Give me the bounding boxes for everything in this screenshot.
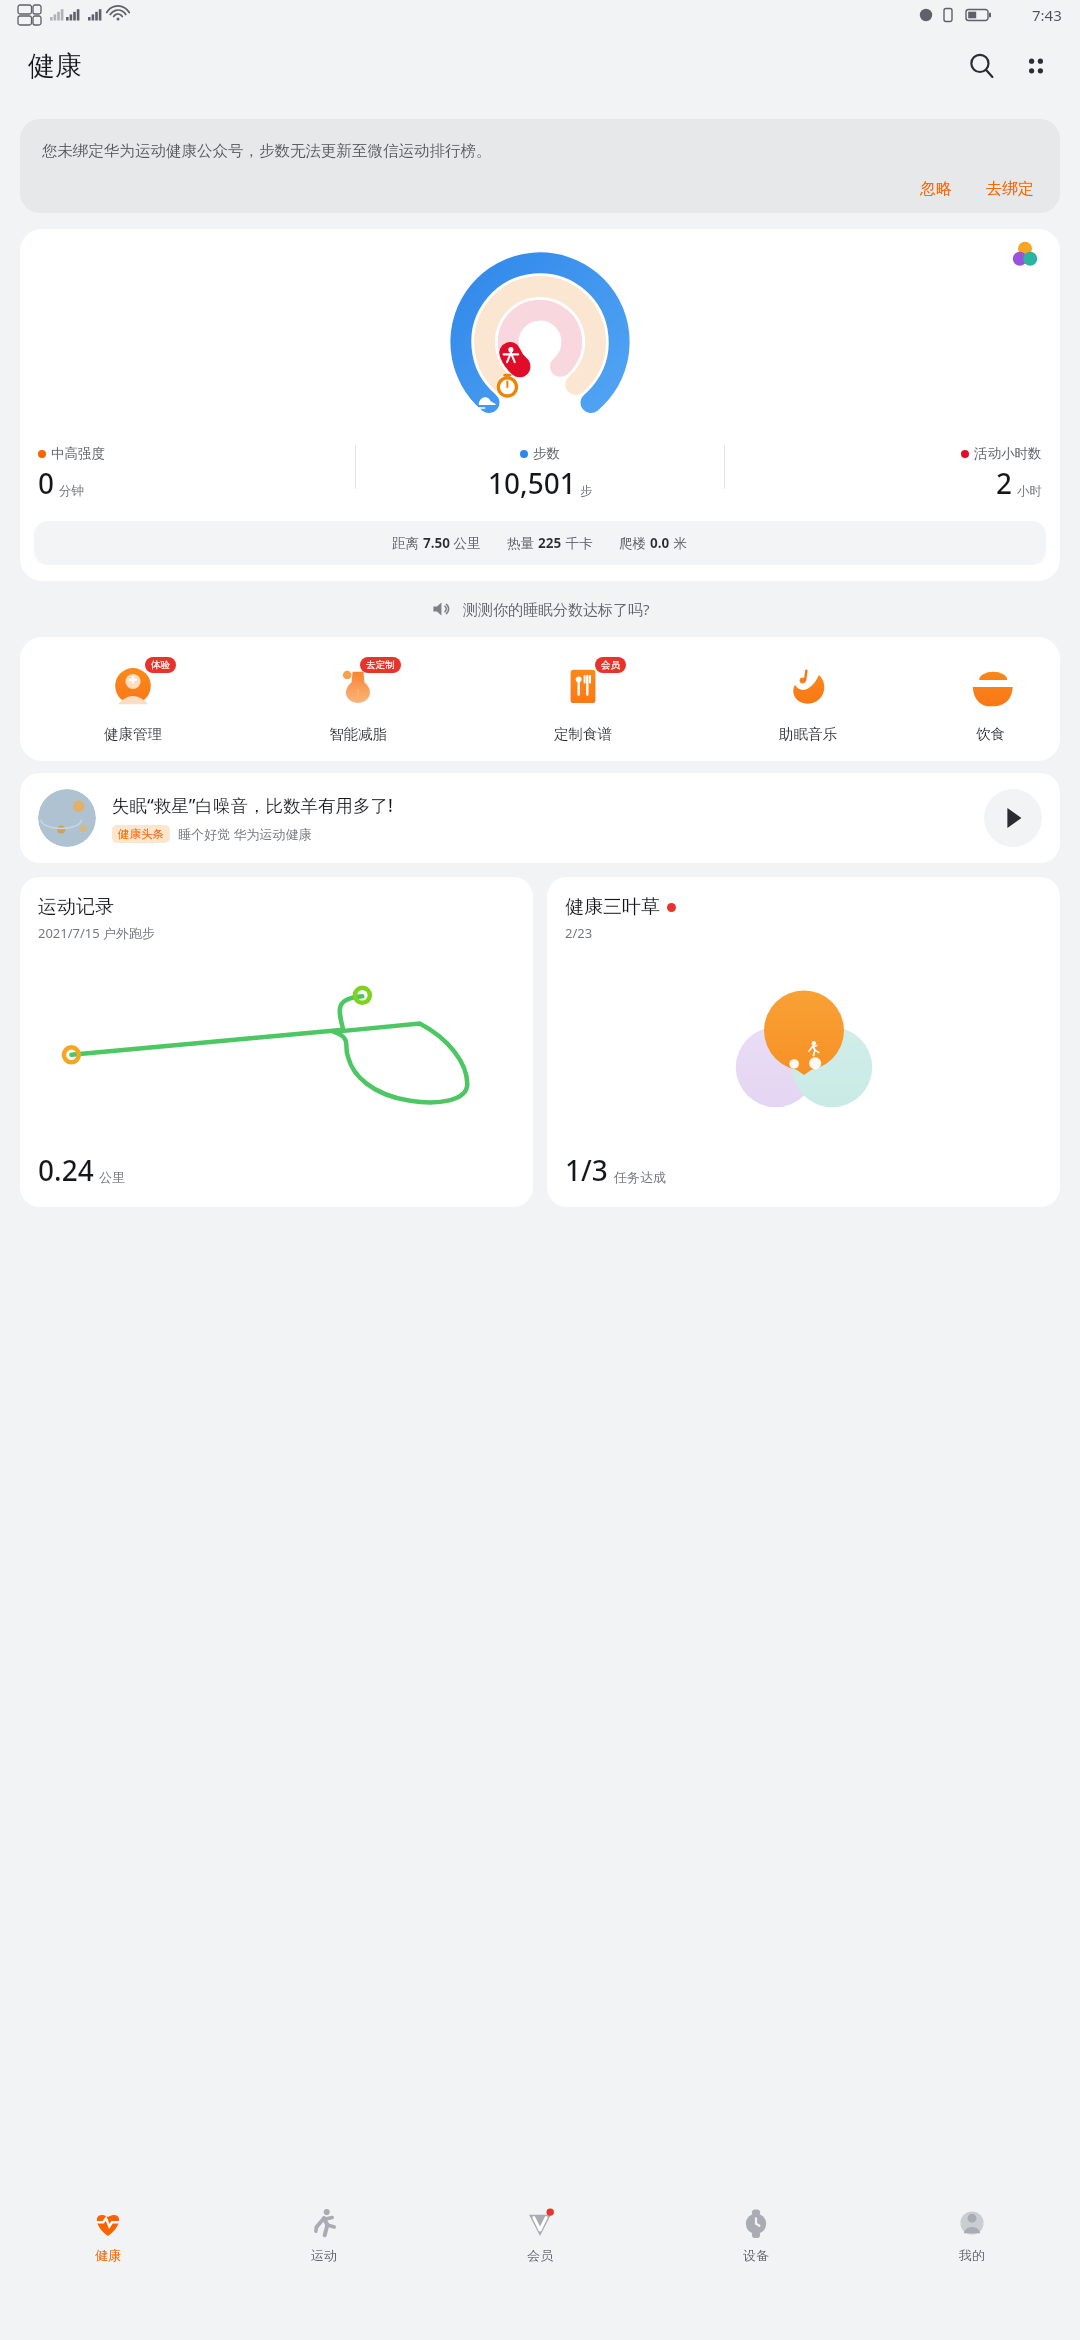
staticText: 去定制	[366, 659, 395, 671]
button[interactable]: 运动	[216, 2190, 432, 2340]
staticText: 运动	[311, 2247, 337, 2263]
staticText: 距离	[392, 534, 423, 552]
button[interactable]: 会员	[432, 2190, 648, 2340]
button[interactable]: 会员	[470, 659, 695, 743]
staticText: 健康三叶草	[565, 895, 660, 919]
staticText: 运动记录	[38, 895, 114, 919]
staticText: 热量	[507, 534, 538, 552]
button[interactable]: Search	[958, 42, 1006, 90]
staticText: 会员	[527, 2247, 553, 2263]
staticText: 步数	[533, 445, 560, 462]
staticText: 睡个好觉 华为运动健康	[178, 825, 312, 843]
button[interactable]: 您未绑定华为运动健康公众号，步数无法更新至微信运动排行榜。	[20, 119, 1060, 213]
staticText: 定制食谱	[554, 725, 612, 743]
staticText: 健康	[95, 2247, 121, 2263]
staticText: 助眠音乐	[779, 725, 837, 743]
staticText: 饮食	[976, 725, 1005, 743]
staticText: 7.50	[423, 534, 450, 552]
button[interactable]: 失眠“救星”白噪音，比数羊有用多了!	[20, 773, 1060, 863]
staticText: 10,501	[488, 464, 576, 502]
staticText: 活动小时数	[974, 445, 1042, 462]
staticText: 体验	[151, 659, 170, 671]
staticText: 0.24	[38, 1151, 94, 1189]
button[interactable]: 测测你的睡眠分数达标了吗?	[0, 595, 1080, 623]
button[interactable]: 设备	[648, 2190, 864, 2340]
staticText: 设备	[743, 2247, 769, 2263]
button[interactable]: Health clover	[990, 229, 1060, 279]
staticText: 我的	[959, 2247, 985, 2263]
button[interactable]: 助眠音乐	[695, 659, 920, 743]
staticText: 您未绑定华为运动健康公众号，步数无法更新至微信运动排行榜。	[42, 141, 492, 161]
staticText: 小时	[1017, 483, 1042, 499]
button[interactable]: 体验	[20, 659, 245, 743]
staticText: 分钟	[59, 483, 84, 499]
staticText: 智能减脂	[329, 725, 387, 743]
button[interactable]: 健康三叶草	[547, 877, 1060, 1207]
button[interactable]: 去定制	[245, 659, 470, 743]
staticText: 225	[538, 534, 562, 552]
staticText: 千卡	[562, 534, 593, 552]
staticText: 2/23	[565, 924, 593, 942]
staticText: 米	[670, 534, 688, 552]
button[interactable]: Play	[984, 789, 1042, 847]
staticText: 公里	[99, 1169, 125, 1185]
button[interactable]: 运动记录	[20, 877, 533, 1207]
staticText: 任务达成	[614, 1169, 666, 1185]
button[interactable]: More options	[1012, 42, 1060, 90]
staticText: 健康	[28, 49, 82, 83]
button[interactable]: 距离	[34, 521, 1046, 565]
staticText: 2	[996, 464, 1013, 502]
staticText: 2021/7/15 户外跑步	[38, 924, 156, 942]
button[interactable]: 健康	[0, 2190, 216, 2340]
button[interactable]: 中高强度	[20, 229, 1060, 581]
staticText: 0.0	[650, 534, 670, 552]
button[interactable]: 饮食	[920, 659, 1060, 743]
staticText: 健康管理	[104, 725, 162, 743]
staticText: 0	[38, 464, 55, 502]
staticText: 步	[580, 483, 593, 499]
staticText: 爬楼	[619, 534, 650, 552]
button[interactable]: 去绑定	[982, 179, 1038, 199]
button[interactable]: 忽略	[916, 179, 956, 199]
staticText: 会员	[601, 659, 620, 671]
staticText: 7:43	[1032, 5, 1062, 25]
staticText: 1/3	[565, 1151, 608, 1189]
staticText: 失眠“救星”白噪音，比数羊有用多了!	[112, 793, 393, 817]
staticText: 健康头条	[118, 827, 164, 841]
button[interactable]: 我的	[864, 2190, 1080, 2340]
staticText: 公里	[450, 534, 481, 552]
staticText: 测测你的睡眠分数达标了吗?	[463, 599, 650, 619]
staticText: 中高强度	[51, 445, 105, 462]
